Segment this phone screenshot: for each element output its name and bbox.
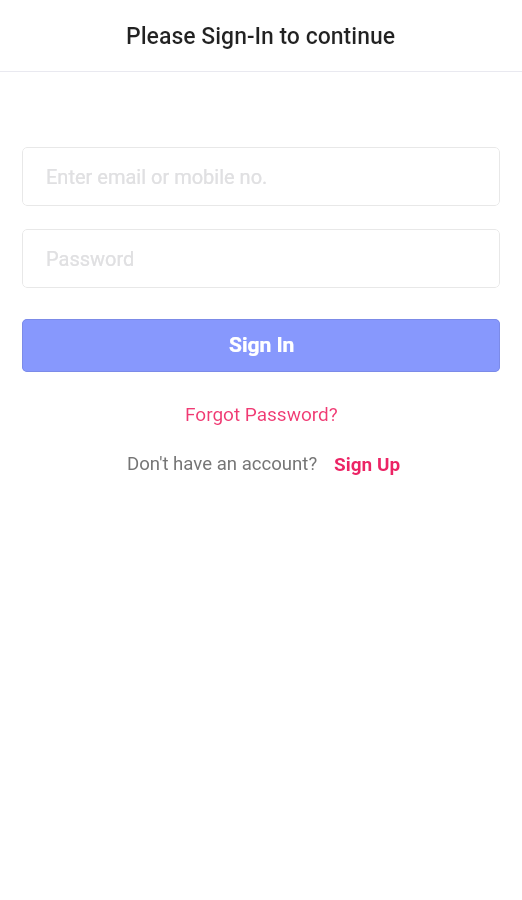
- staticText: Don't have an account?: [127, 453, 318, 475]
- button[interactable]: Password: [22, 229, 500, 288]
- button[interactable]: Sign In: [22, 319, 500, 372]
- staticText: Password: [46, 247, 135, 270]
- staticText: Please Sign-In to continue: [126, 23, 396, 50]
- button[interactable]: Sign Up: [334, 453, 401, 475]
- button[interactable]: Enter email or mobile no.: [22, 147, 500, 206]
- staticText: Forgot Password?: [185, 403, 338, 425]
- staticText: Sign Up: [334, 453, 401, 475]
- staticText: Enter email or mobile no.: [46, 165, 268, 188]
- staticText: Sign In: [229, 333, 295, 358]
- button[interactable]: Forgot Password?: [175, 401, 348, 427]
